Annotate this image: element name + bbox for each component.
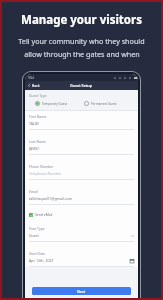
button[interactable]: Pass Type [25,223,138,242]
staticText: Next [77,289,86,294]
staticText: First Name [29,114,47,119]
staticText: Guest Type [29,93,47,98]
staticText: TALIB [29,121,134,126]
button[interactable]: Next [32,287,131,295]
button[interactable]: Start Date [25,248,138,267]
staticText: Start Date [29,251,46,256]
staticText: Telephone Number [29,171,134,176]
button[interactable]: Send eMail [25,212,138,217]
button[interactable]: Phone Number [25,161,138,180]
staticText: talibhaque01@gmail.com [29,196,134,201]
button[interactable]: Permanent Guest [84,101,128,106]
staticText: Guest [29,233,131,238]
staticText: allow through the gates and when [24,49,140,59]
button[interactable]: First Name [25,111,138,130]
staticText: Apr 13th, 2021 [29,258,130,263]
staticText: JAVED [29,146,134,151]
staticText: Send eMail [35,212,53,217]
button[interactable]: Email [25,186,138,205]
staticText: Back [32,83,40,88]
staticText: Last Name [29,139,46,144]
button[interactable]: Back [25,83,43,88]
staticText: Manage your visitors [21,12,142,28]
staticText: Phone Number [29,164,54,169]
staticText: Tell your community who they should [18,36,145,46]
staticText: 9:54 [28,76,34,80]
staticText: Pass Type [29,226,45,231]
staticText: Guest Setup [70,83,93,88]
staticText: Temporary Guest [42,102,68,106]
button[interactable]: Last Name [25,136,138,155]
button[interactable]: Temporary Guest [35,101,78,106]
staticText: Email [29,189,38,194]
staticText: Permanent Guest [91,102,117,106]
